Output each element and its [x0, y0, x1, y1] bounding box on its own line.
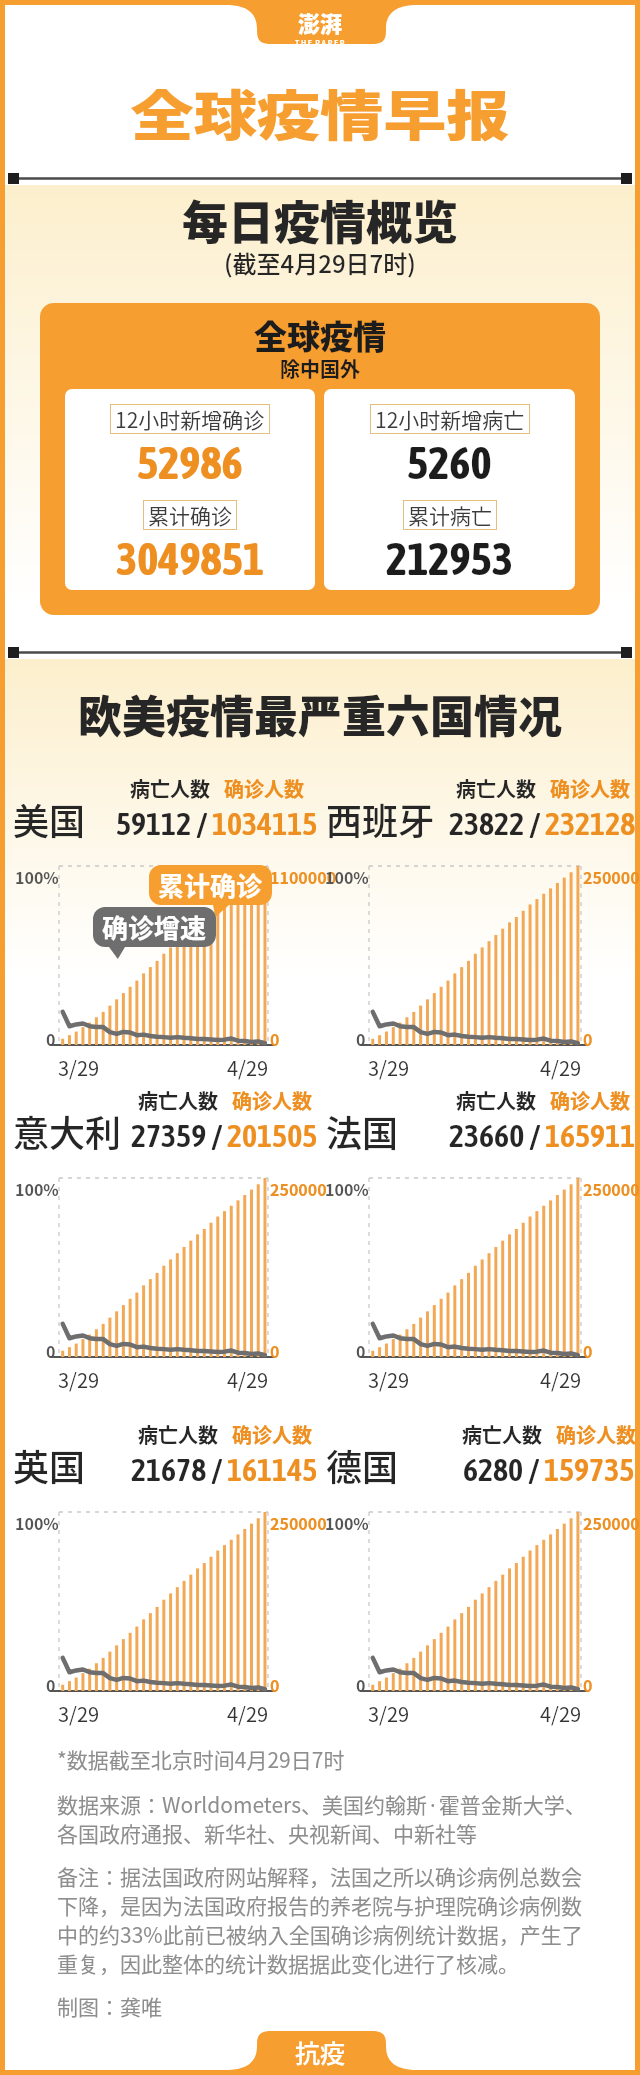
staticText: 0 — [583, 1339, 593, 1362]
staticText: 5260 — [407, 437, 492, 489]
staticText: 确诊人数 — [550, 1086, 630, 1115]
button[interactable]: 意大利 — [12, 1082, 318, 1152]
staticText: 澎湃 — [298, 6, 343, 38]
staticText: 确诊人数 — [550, 774, 630, 803]
staticText: 165911 — [545, 1117, 636, 1154]
staticText: 病亡人数 — [130, 774, 210, 803]
staticText: 100% — [325, 1511, 369, 1534]
staticText: 250000 — [583, 865, 640, 888]
staticText: 212953 — [386, 533, 513, 585]
staticText: 3/29 — [58, 1699, 100, 1728]
staticText: 3/29 — [58, 1053, 100, 1082]
staticText: 病亡人数 — [138, 1420, 218, 1449]
staticText: 250000 — [583, 1177, 640, 1200]
button[interactable]: 西班牙 — [325, 770, 636, 840]
staticText: 英国 — [13, 1439, 86, 1491]
staticText: 3/29 — [368, 1053, 410, 1082]
staticText: 备注：据法国政府网站解释，法国之所以确诊病例总数会下降，是因为法国政府报告的养老… — [57, 1861, 599, 1978]
staticText: 0 — [46, 1027, 56, 1050]
staticText: 制图：龚唯 — [57, 1991, 162, 2021]
staticText: 3049851 — [116, 533, 265, 585]
staticText: / — [207, 1117, 227, 1154]
staticText: 每日疫情概览 — [182, 186, 458, 253]
staticText: 西班牙 — [326, 793, 435, 845]
staticText: 确诊人数 — [224, 774, 304, 803]
staticText: / — [525, 805, 545, 842]
staticText: / — [525, 1117, 545, 1154]
staticText: 累计确诊 — [158, 866, 263, 904]
staticText: *数据截至北京时间4月29日7时 — [57, 1744, 345, 1774]
staticText: 3/29 — [368, 1699, 410, 1728]
staticText: 1034115 — [212, 805, 318, 842]
staticText: 除中国外 — [280, 354, 360, 383]
staticText: 确诊人数 — [232, 1420, 312, 1449]
staticText: T H E P A P E R — [295, 38, 345, 45]
staticText: / — [207, 1451, 227, 1488]
staticText: 4/29 — [227, 1365, 269, 1394]
staticText: 100% — [15, 1511, 59, 1534]
staticText: 3/29 — [368, 1365, 410, 1394]
staticText: 抗疫 — [295, 2034, 346, 2070]
staticText: / — [524, 1451, 544, 1488]
staticText: 250000 — [270, 1177, 327, 1200]
staticText: 232128 — [545, 805, 636, 842]
staticText: 确诊增速 — [102, 908, 207, 946]
staticText: 病亡人数 — [462, 1420, 542, 1449]
staticText: 250000 — [270, 1511, 327, 1534]
staticText: 0 — [356, 1027, 366, 1050]
staticText: 意大利 — [13, 1105, 122, 1157]
staticText: 法国 — [326, 1105, 399, 1157]
staticText: 数据来源：Worldometers、美国约翰斯·霍普金斯大学、各国政府通报、新华… — [57, 1789, 599, 1848]
staticText: 23822 — [449, 805, 525, 842]
staticText: 23660 — [449, 1117, 525, 1154]
staticText: 0 — [356, 1673, 366, 1696]
staticText: 12小时新增病亡 — [375, 404, 525, 434]
staticText: 病亡人数 — [456, 774, 536, 803]
button[interactable]: 12小时新增确诊 — [65, 389, 315, 590]
staticText: 0 — [270, 1027, 280, 1050]
staticText: 100% — [15, 865, 59, 888]
button[interactable]: 英国 — [12, 1416, 318, 1486]
staticText: 美国 — [13, 793, 86, 845]
button[interactable]: 法国 — [325, 1082, 636, 1152]
staticText: 欧美疫情最严重六国情况 — [5, 682, 635, 746]
staticText: 6280 — [463, 1451, 524, 1488]
staticText: 0 — [583, 1027, 593, 1050]
staticText: 确诊人数 — [556, 1420, 636, 1449]
staticText: 27359 — [131, 1117, 207, 1154]
button[interactable]: 全球疫情 — [40, 303, 600, 615]
staticText: 0 — [270, 1339, 280, 1362]
staticText: (截至4月29日7时) — [224, 245, 416, 280]
button[interactable]: 澎湃新闻 The Paper — [5, 5, 635, 44]
staticText: 100% — [325, 1177, 369, 1200]
staticText: 4/29 — [540, 1365, 582, 1394]
staticText: 100% — [15, 1177, 59, 1200]
staticText: 59112 — [116, 805, 192, 842]
staticText: 累计确诊 — [148, 500, 232, 530]
staticText: 0 — [46, 1339, 56, 1362]
staticText: 病亡人数 — [456, 1086, 536, 1115]
staticText: 12小时新增确诊 — [115, 404, 265, 434]
staticText: 0 — [583, 1673, 593, 1696]
staticText: 201505 — [227, 1117, 318, 1154]
staticText: 0 — [46, 1673, 56, 1696]
staticText: 4/29 — [540, 1699, 582, 1728]
staticText: 21678 — [131, 1451, 207, 1488]
staticText: 3/29 — [58, 1365, 100, 1394]
staticText: 累计病亡 — [408, 500, 492, 530]
staticText: 250000 — [583, 1511, 640, 1534]
staticText: 161145 — [227, 1451, 318, 1488]
staticText: 4/29 — [540, 1053, 582, 1082]
button[interactable]: 美国 — [12, 770, 318, 840]
button[interactable]: 抗疫 — [5, 2031, 635, 2070]
staticText: 159735 — [544, 1451, 635, 1488]
staticText: 4/29 — [227, 1053, 269, 1082]
staticText: / — [192, 805, 212, 842]
button[interactable]: 德国 — [325, 1416, 636, 1486]
staticText: 德国 — [326, 1439, 399, 1491]
staticText: 病亡人数 — [138, 1086, 218, 1115]
staticText: 100% — [325, 865, 369, 888]
staticText: 1100000 — [270, 865, 337, 888]
staticText: 0 — [270, 1673, 280, 1696]
button[interactable]: 12小时新增病亡 — [324, 389, 575, 590]
